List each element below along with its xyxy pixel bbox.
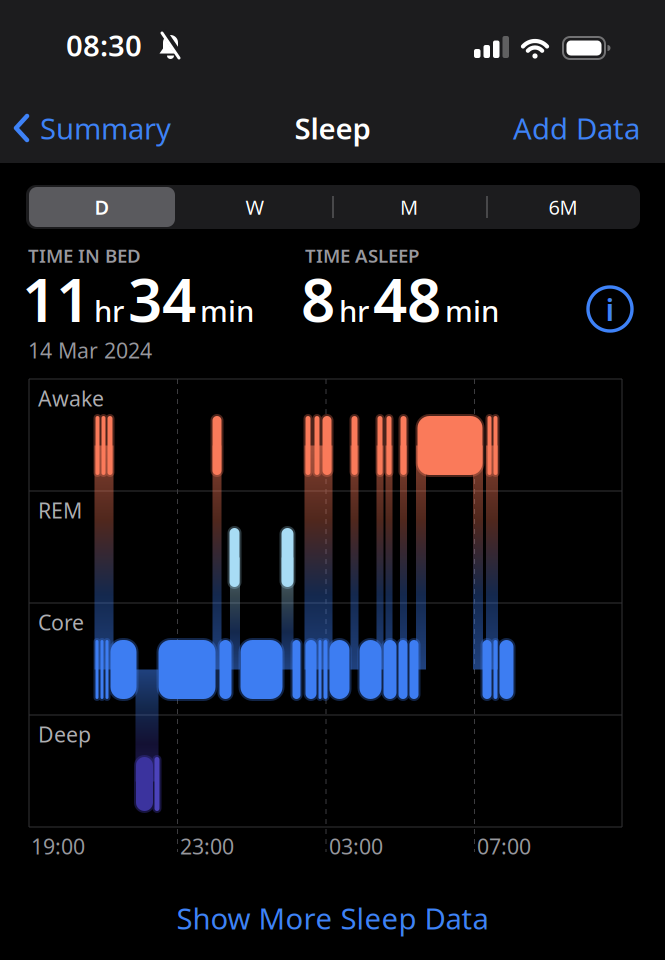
staticText: 14 Mar 2024 xyxy=(28,336,152,364)
staticText: 08:30 xyxy=(66,25,142,64)
staticText: 48 xyxy=(373,259,441,339)
staticText: i xyxy=(605,289,614,329)
button[interactable]: W xyxy=(180,187,330,227)
staticText: 8 xyxy=(301,259,335,339)
button[interactable]: Back xyxy=(14,108,171,147)
staticText: Deep xyxy=(38,720,91,748)
staticText: Sleep xyxy=(294,108,370,147)
button[interactable]: M xyxy=(334,187,484,227)
staticText: hr xyxy=(94,291,124,330)
staticText: 11 xyxy=(22,259,90,339)
staticText: min xyxy=(445,291,499,330)
staticText: Awake xyxy=(38,384,104,412)
staticText: TIME ASLEEP xyxy=(305,243,419,268)
staticText: 19:00 xyxy=(31,832,85,860)
button[interactable]: Add Data xyxy=(513,108,640,147)
staticText: 07:00 xyxy=(477,832,531,860)
staticText: W xyxy=(245,194,264,220)
staticText: min xyxy=(200,291,254,330)
staticText: 03:00 xyxy=(329,832,383,860)
staticText: Summary xyxy=(40,108,171,147)
staticText: 34 xyxy=(128,259,196,339)
staticText: Core xyxy=(38,608,84,636)
staticText: Add Data xyxy=(513,108,640,147)
staticText: hr xyxy=(339,291,369,330)
staticText: D xyxy=(94,194,109,220)
staticText: Show More Sleep Data xyxy=(176,898,488,937)
staticText: REM xyxy=(38,496,82,524)
staticText: M xyxy=(400,194,418,220)
button[interactable]: 6M xyxy=(488,187,638,227)
staticText: 6M xyxy=(548,194,577,220)
staticText: TIME IN BED xyxy=(28,243,141,268)
button[interactable]: More info xyxy=(587,286,633,332)
staticText: 23:00 xyxy=(180,832,234,860)
button[interactable]: Show More Sleep Data xyxy=(176,898,488,937)
button[interactable]: D xyxy=(29,187,175,227)
